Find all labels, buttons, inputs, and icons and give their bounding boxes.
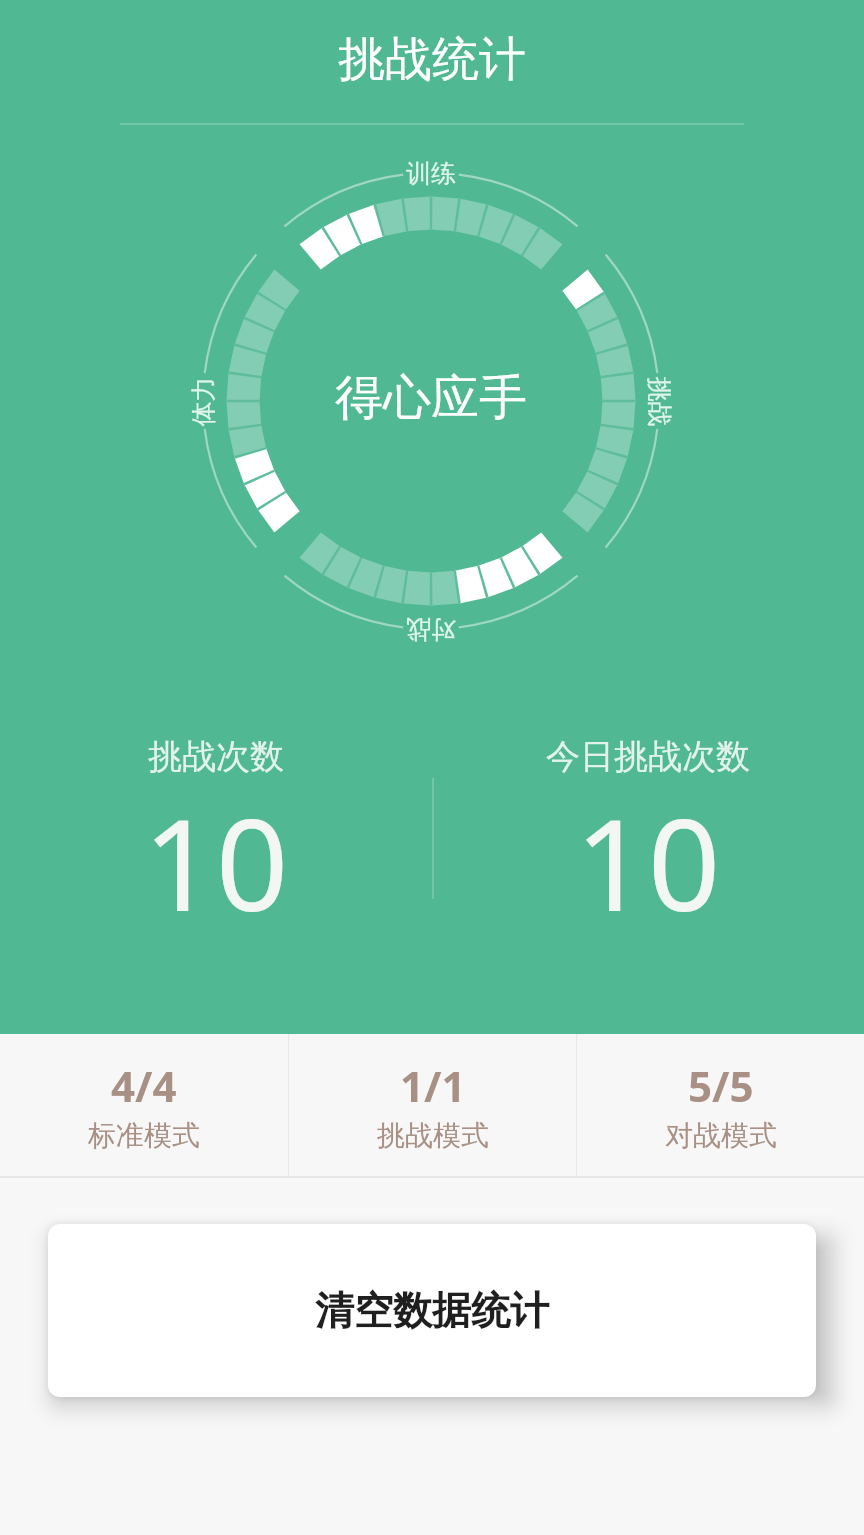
staticText: 体力 — [187, 376, 218, 426]
staticText: 训练 — [406, 158, 456, 189]
staticText: 1/1 — [400, 1057, 466, 1114]
staticText: 清空数据统计 — [315, 1286, 549, 1335]
staticText: 10 — [143, 775, 289, 948]
button[interactable]: 5/5 — [577, 1034, 864, 1176]
staticText: 5/5 — [688, 1057, 754, 1114]
staticText: 4/4 — [111, 1057, 177, 1114]
staticText: 挑战统计 — [338, 30, 526, 89]
staticText: 今日挑战次数 — [546, 735, 750, 778]
button[interactable]: 4/4 — [0, 1034, 288, 1176]
button[interactable]: 清空数据统计 — [48, 1224, 816, 1397]
staticText: 挑战 — [643, 376, 674, 426]
staticText: 得心应手 — [335, 368, 527, 428]
staticText: 挑战模式 — [377, 1118, 489, 1153]
button[interactable]: 1/1 — [289, 1034, 576, 1176]
staticText: 挑战次数 — [148, 735, 284, 778]
staticText: 对战 — [406, 614, 456, 645]
staticText: 10 — [575, 775, 721, 948]
staticText: 对战模式 — [665, 1118, 777, 1153]
staticText: 标准模式 — [88, 1118, 200, 1153]
